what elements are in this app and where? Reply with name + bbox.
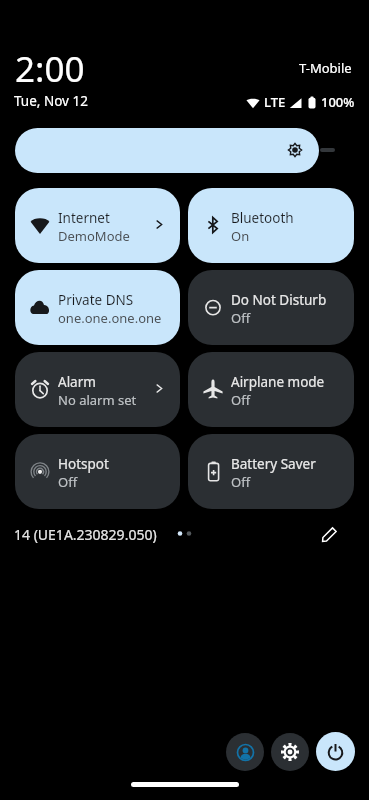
staticText: one.one.one.one bbox=[58, 309, 162, 327]
staticText: LTE bbox=[264, 93, 286, 111]
staticText: T-Mobile bbox=[299, 59, 352, 77]
staticText: Hotspot bbox=[58, 455, 109, 473]
staticText: Do Not Disturb bbox=[231, 291, 327, 309]
staticText: Bluetooth bbox=[231, 209, 294, 227]
staticText: 2:00 bbox=[15, 45, 85, 93]
staticText: Battery Saver bbox=[231, 455, 316, 473]
staticText: No alarm set bbox=[58, 391, 137, 409]
staticText: Off bbox=[231, 309, 251, 327]
staticText: On bbox=[231, 227, 250, 245]
button[interactable]: Bluetooth bbox=[188, 188, 354, 263]
button[interactable]: Hotspot bbox=[15, 434, 180, 509]
button[interactable]: Alarm bbox=[15, 352, 180, 427]
staticText: Alarm bbox=[58, 373, 96, 391]
staticText: Off bbox=[231, 391, 251, 409]
staticText: 100% bbox=[321, 93, 355, 111]
button[interactable]: Internet bbox=[15, 188, 180, 263]
staticText: Off bbox=[231, 473, 251, 491]
button[interactable]: User account bbox=[226, 733, 264, 771]
staticText: DemoMode bbox=[58, 227, 130, 245]
button[interactable]: Edit bbox=[315, 520, 344, 549]
button[interactable]: Battery Saver bbox=[188, 434, 354, 509]
button[interactable]: Power bbox=[316, 732, 355, 771]
staticText: Tue, Nov 12 bbox=[14, 92, 88, 110]
staticText: Off bbox=[58, 473, 78, 491]
button[interactable]: Settings bbox=[271, 733, 309, 771]
button[interactable]: Private DNS bbox=[15, 270, 180, 345]
staticText: Airplane mode bbox=[231, 373, 325, 391]
button[interactable]: Brightness bbox=[15, 128, 319, 173]
button[interactable]: Do Not Disturb bbox=[188, 270, 354, 345]
staticText: Internet bbox=[58, 209, 110, 227]
staticText: 14 (UE1A.230829.050) bbox=[14, 525, 157, 544]
staticText: Private DNS bbox=[58, 291, 134, 309]
button[interactable]: Airplane mode bbox=[188, 352, 354, 427]
